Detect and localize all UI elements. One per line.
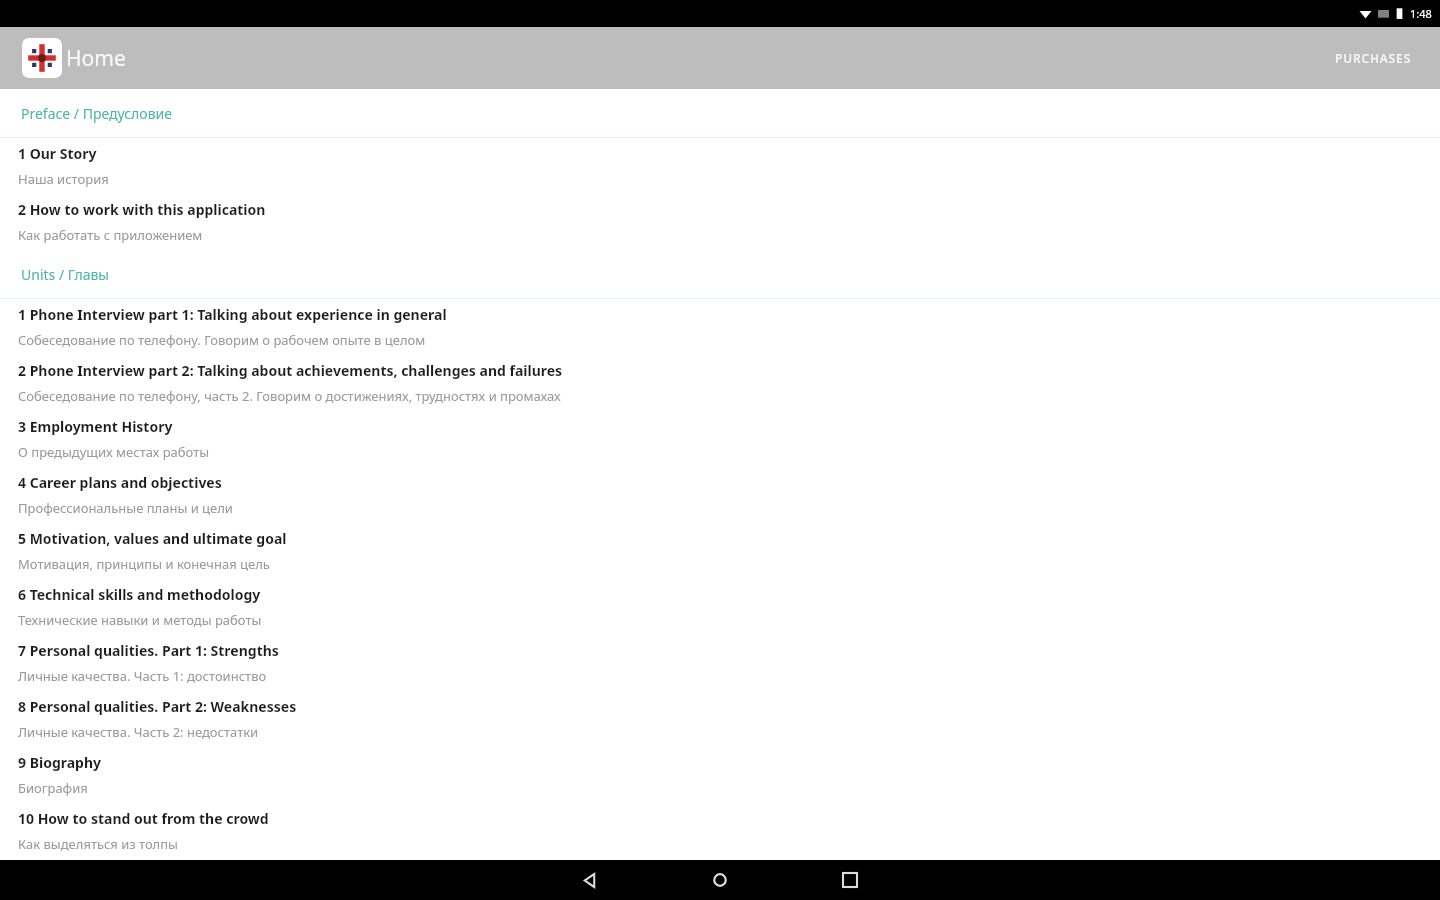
- staticText: Как работать с приложением: [18, 226, 203, 244]
- button[interactable]: Home: [655, 860, 785, 900]
- button[interactable]: 7 Personal qualities. Part 1: Strengths: [0, 635, 1440, 691]
- staticText: Личные качества. Часть 2: недостатки: [18, 723, 259, 741]
- staticText: 2 Phone Interview part 2: Talking about …: [18, 361, 563, 380]
- staticText: Наша история: [18, 170, 109, 188]
- staticText: 2 How to work with this application: [18, 200, 266, 219]
- button[interactable]: Recent apps: [785, 860, 915, 900]
- staticText: PURCHASES: [1335, 50, 1412, 66]
- staticText: Как выделяться из толпы: [18, 835, 178, 853]
- staticText: Units / Главы: [21, 265, 109, 284]
- button[interactable]: Units / Главы: [0, 250, 1440, 298]
- staticText: Биография: [18, 779, 88, 797]
- button[interactable]: 4 Career plans and objectives: [0, 467, 1440, 523]
- button[interactable]: Preface / Предусловие: [0, 89, 1440, 137]
- button[interactable]: 2 How to work with this application: [0, 194, 1440, 250]
- button[interactable]: Back: [525, 860, 655, 900]
- staticText: Личные качества. Часть 1: достоинство: [18, 667, 267, 685]
- button[interactable]: 5 Motivation, values and ultimate goal: [0, 523, 1440, 579]
- button[interactable]: 9 Biography: [0, 747, 1440, 803]
- button[interactable]: 1 Our Story: [0, 138, 1440, 194]
- staticText: 3 Employment History: [18, 417, 173, 436]
- staticText: 5 Motivation, values and ultimate goal: [18, 529, 287, 548]
- staticText: О предыдущих местах работы: [18, 443, 210, 461]
- staticText: 7 Personal qualities. Part 1: Strengths: [18, 641, 279, 660]
- button[interactable]: PURCHASES: [1329, 42, 1418, 74]
- button[interactable]: 6 Technical skills and methodology: [0, 579, 1440, 635]
- other: App icon: [22, 38, 62, 78]
- button[interactable]: 2 Phone Interview part 2: Talking about …: [0, 355, 1440, 411]
- button[interactable]: 10 How to stand out from the crowd: [0, 803, 1440, 859]
- staticText: Мотивация, принципы и конечная цель: [18, 555, 270, 573]
- staticText: Профессиональные планы и цели: [18, 499, 233, 517]
- button[interactable]: 1 Phone Interview part 1: Talking about …: [0, 299, 1440, 355]
- staticText: Собеседование по телефону, часть 2. Гово…: [18, 387, 561, 405]
- staticText: Технические навыки и методы работы: [18, 611, 262, 629]
- button[interactable]: 8 Personal qualities. Part 2: Weaknesses: [0, 691, 1440, 747]
- staticText: 8 Personal qualities. Part 2: Weaknesses: [18, 697, 297, 716]
- staticText: 9 Biography: [18, 753, 102, 772]
- staticText: 1 Our Story: [18, 144, 97, 163]
- staticText: 1:48: [1410, 6, 1432, 21]
- staticText: Home: [66, 44, 126, 73]
- staticText: 6 Technical skills and methodology: [18, 585, 261, 604]
- staticText: Preface / Предусловие: [21, 104, 172, 123]
- staticText: 4 Career plans and objectives: [18, 473, 222, 492]
- button[interactable]: 3 Employment History: [0, 411, 1440, 467]
- staticText: 1 Phone Interview part 1: Talking about …: [18, 305, 447, 324]
- staticText: 10 How to stand out from the crowd: [18, 809, 269, 828]
- staticText: Собеседование по телефону. Говорим о раб…: [18, 331, 426, 349]
